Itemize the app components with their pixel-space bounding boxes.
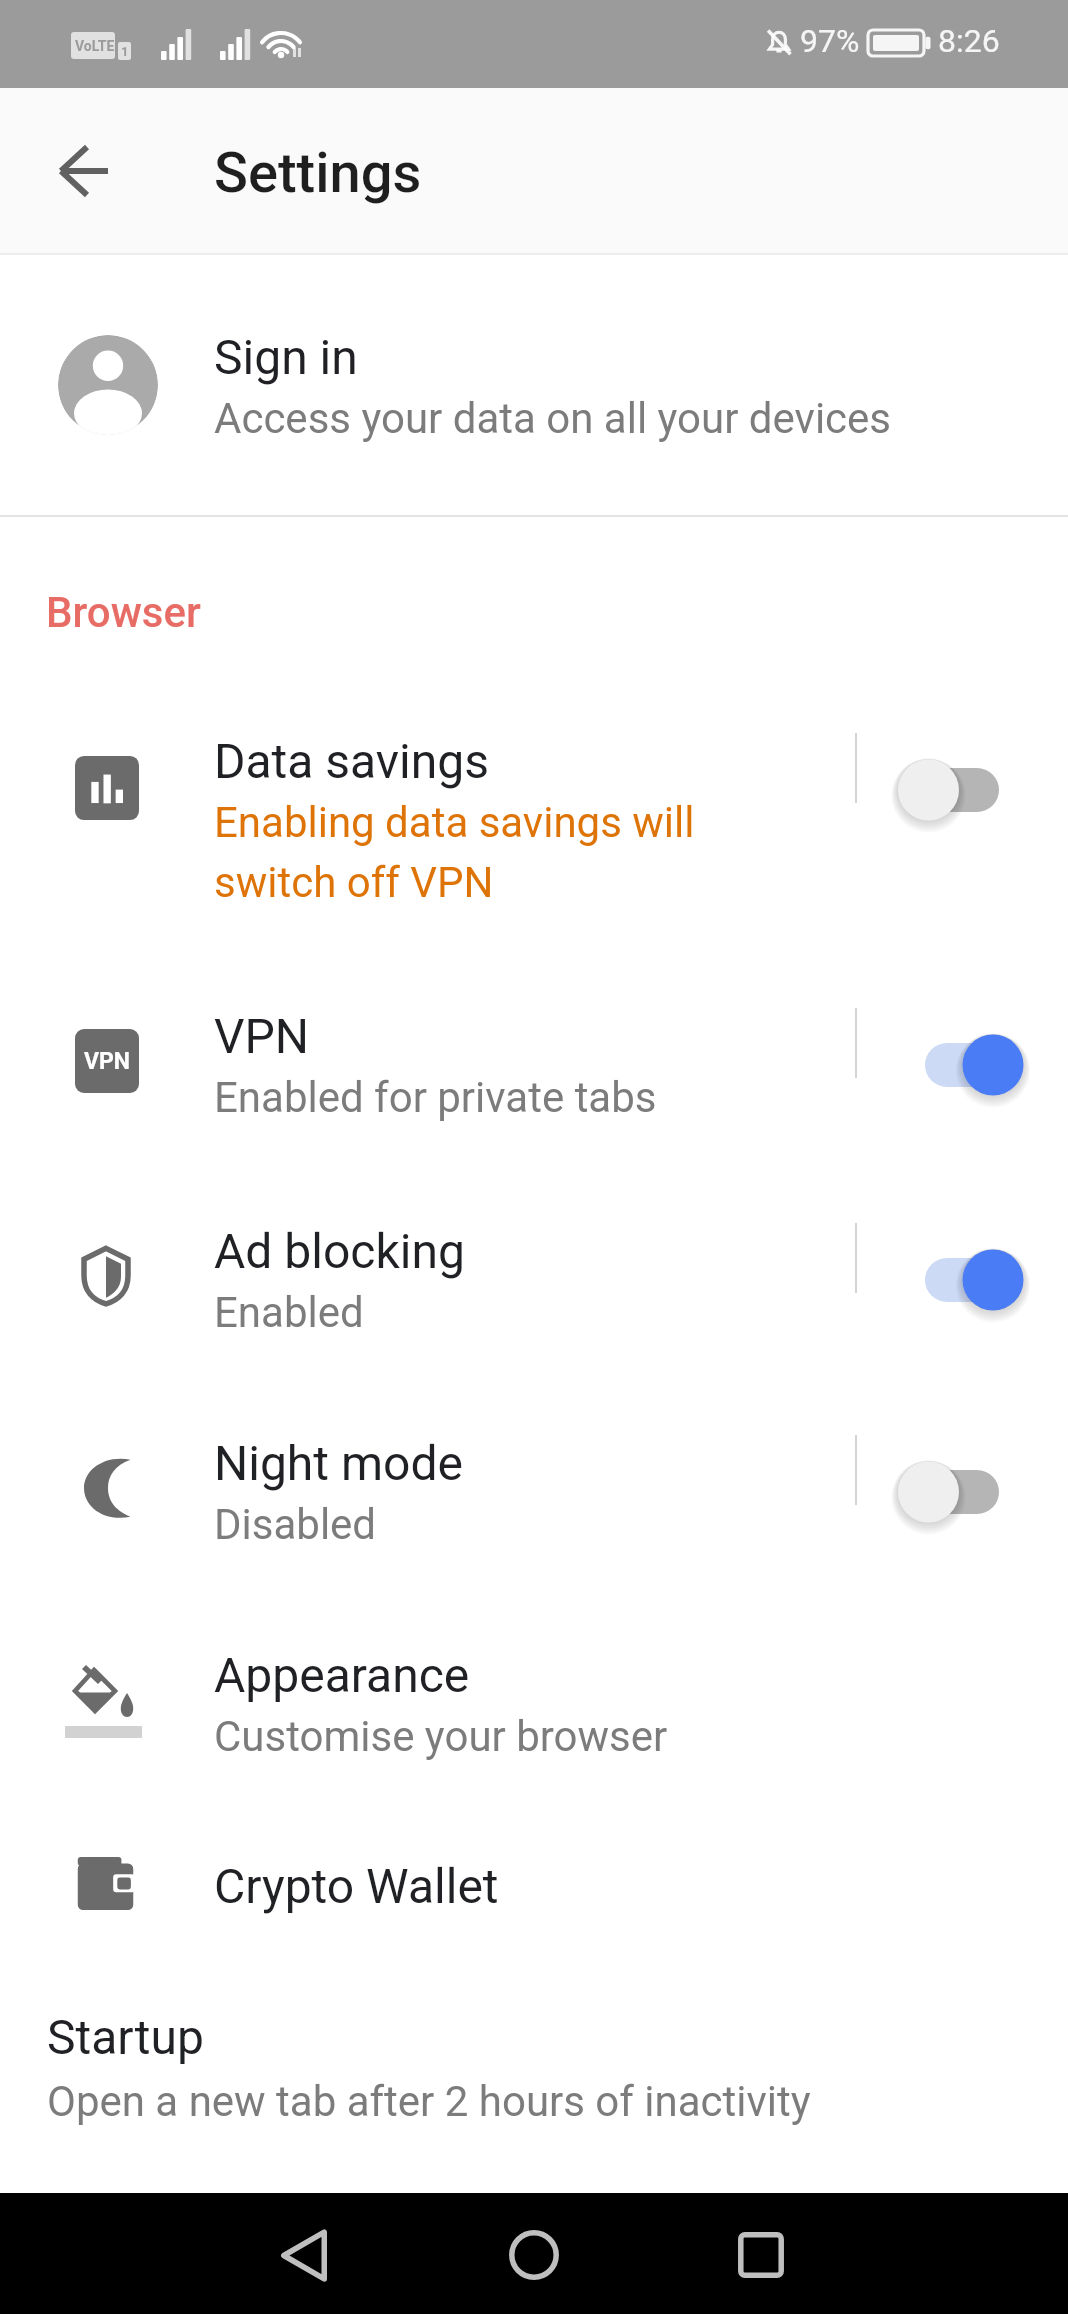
staticText: 8:26 <box>938 22 1000 60</box>
button[interactable]: Back <box>248 2199 360 2311</box>
staticText: Browser <box>46 588 201 637</box>
button[interactable]: Back <box>0 88 160 255</box>
button[interactable]: Data savings <box>0 661 1068 931</box>
button[interactable]: Home <box>478 2199 590 2311</box>
staticText: Customise your browser <box>214 1712 714 1761</box>
staticText: VPN <box>214 1008 310 1064</box>
staticText: 1 <box>121 44 129 59</box>
button[interactable]: Night mode <box>0 1363 1068 1575</box>
staticText: Data savings <box>214 733 490 789</box>
staticText: Crypto Wallet <box>214 1858 499 1914</box>
button[interactable]: Crypto Wallet <box>0 1786 1068 1966</box>
staticText: VPN <box>84 1048 131 1075</box>
staticText: Disabled <box>214 1500 714 1549</box>
button[interactable]: Sign in <box>0 255 1068 515</box>
button[interactable]: Recent apps <box>705 2199 817 2311</box>
staticText: Open a new tab after 2 hours of inactivi… <box>47 2077 811 2126</box>
staticText: VoLTE <box>75 38 115 54</box>
button[interactable]: Browser <box>46 588 201 637</box>
button[interactable]: VPN <box>0 936 1068 1146</box>
staticText: Ad blocking <box>214 1223 465 1279</box>
button[interactable]: Appearance <box>0 1575 1068 1787</box>
button[interactable]: Startup <box>0 1937 1068 2187</box>
button[interactable]: Data savings switch <box>880 728 1040 852</box>
staticText: 97% <box>800 22 860 60</box>
staticText: Appearance <box>214 1647 470 1703</box>
staticText: Sign in <box>214 329 358 385</box>
button[interactable]: VPN switch <box>880 1003 1040 1127</box>
staticText: Enabled <box>214 1288 714 1337</box>
staticText: Enabling data savings will switch off VP… <box>214 798 714 907</box>
button[interactable]: Ad blocking <box>0 1151 1068 1363</box>
staticText: Settings <box>214 140 422 206</box>
staticText: Access your data on all your devices <box>214 394 892 443</box>
button[interactable]: Ad blocking switch <box>880 1218 1040 1342</box>
staticText: Enabled for private tabs <box>214 1073 714 1122</box>
staticText: Night mode <box>214 1435 463 1491</box>
button[interactable]: Night mode switch <box>880 1430 1040 1554</box>
staticText: Startup <box>47 2009 204 2065</box>
